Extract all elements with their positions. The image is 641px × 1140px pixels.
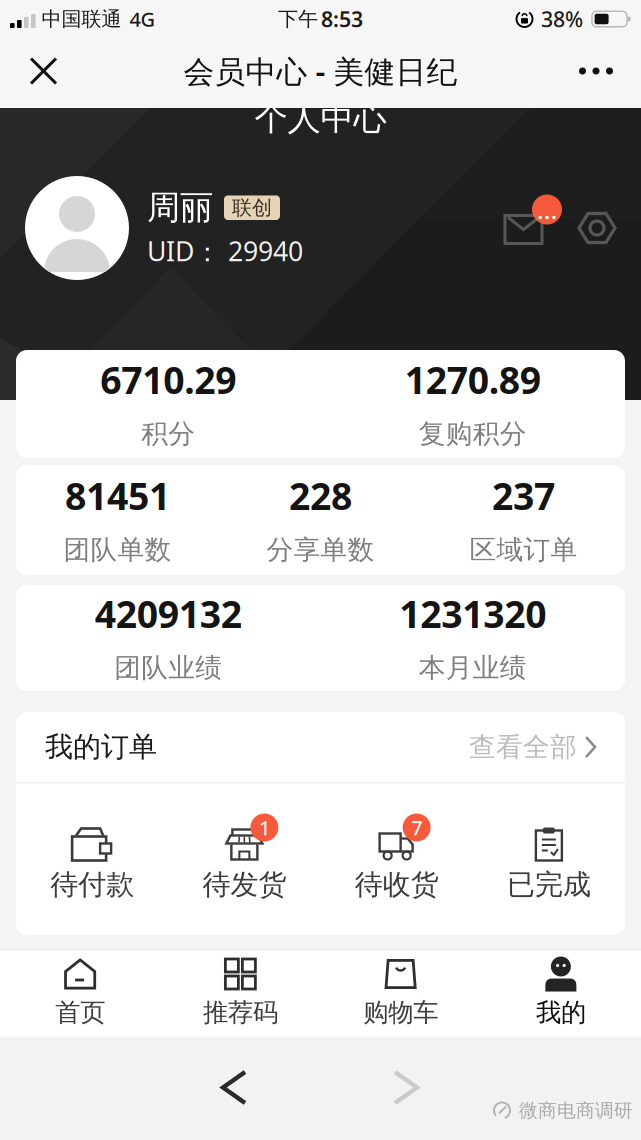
staticText: 待发货	[202, 867, 286, 902]
staticText: 区域订单	[469, 533, 577, 566]
staticText: 1270.89	[405, 355, 541, 404]
staticText: 我的订单	[45, 730, 157, 764]
staticText: 38%	[541, 5, 583, 33]
staticText: 81451	[65, 471, 170, 520]
staticText: 4G	[130, 6, 156, 32]
button[interactable]: 首页	[0, 956, 160, 1028]
staticText: 分享单数	[266, 533, 374, 566]
button[interactable]: More	[579, 43, 641, 98]
button[interactable]: Messages	[499, 206, 555, 249]
staticText: 待收货	[355, 867, 439, 902]
staticText: 购物车	[363, 997, 438, 1028]
staticText: 228	[289, 471, 352, 520]
staticText: 周丽	[147, 187, 213, 228]
staticText: 个人中心	[254, 98, 386, 139]
button[interactable]: Close	[0, 42, 56, 99]
staticText: 7	[411, 814, 422, 841]
staticText: UID： 29940	[147, 233, 303, 269]
button[interactable]: 购物车	[320, 956, 481, 1028]
button[interactable]: Settings	[555, 212, 641, 244]
button[interactable]: 我的订单	[16, 712, 625, 782]
staticText: 下午	[278, 7, 318, 31]
staticText: 1	[259, 814, 270, 841]
staticText: 首页	[55, 997, 105, 1028]
staticText: 我的	[536, 997, 586, 1028]
staticText: 联创	[232, 195, 272, 220]
staticText: 4209132	[95, 589, 242, 638]
button[interactable]: 7	[320, 823, 473, 902]
staticText: 团队单数	[63, 533, 171, 566]
staticText: 积分	[141, 417, 195, 450]
staticText: 中国联通	[42, 7, 122, 31]
staticText: 237	[492, 471, 555, 520]
staticText: 复购积分	[419, 417, 527, 450]
button[interactable]: Forward	[383, 1060, 430, 1115]
staticText: 1231320	[399, 589, 546, 638]
staticText: 团队业绩	[114, 651, 222, 684]
staticText: 已完成	[507, 867, 591, 902]
button[interactable]: 已完成	[473, 823, 625, 902]
staticText: 本月业绩	[419, 651, 527, 684]
staticText: 6710.29	[100, 355, 236, 404]
button[interactable]: 1	[168, 823, 320, 902]
staticText: 推荐码	[203, 997, 278, 1028]
button[interactable]: 推荐码	[160, 956, 320, 1028]
staticText: 8:53	[321, 5, 363, 33]
staticText: 待付款	[50, 867, 134, 902]
staticText: 会员中心 - 美健日纪	[183, 51, 457, 91]
staticText: 微商电商调研	[519, 1099, 633, 1122]
button[interactable]: Back	[211, 1060, 258, 1115]
button[interactable]: 待付款	[16, 823, 168, 902]
button[interactable]: 我的	[481, 956, 641, 1028]
staticText: 查看全部	[469, 731, 577, 763]
